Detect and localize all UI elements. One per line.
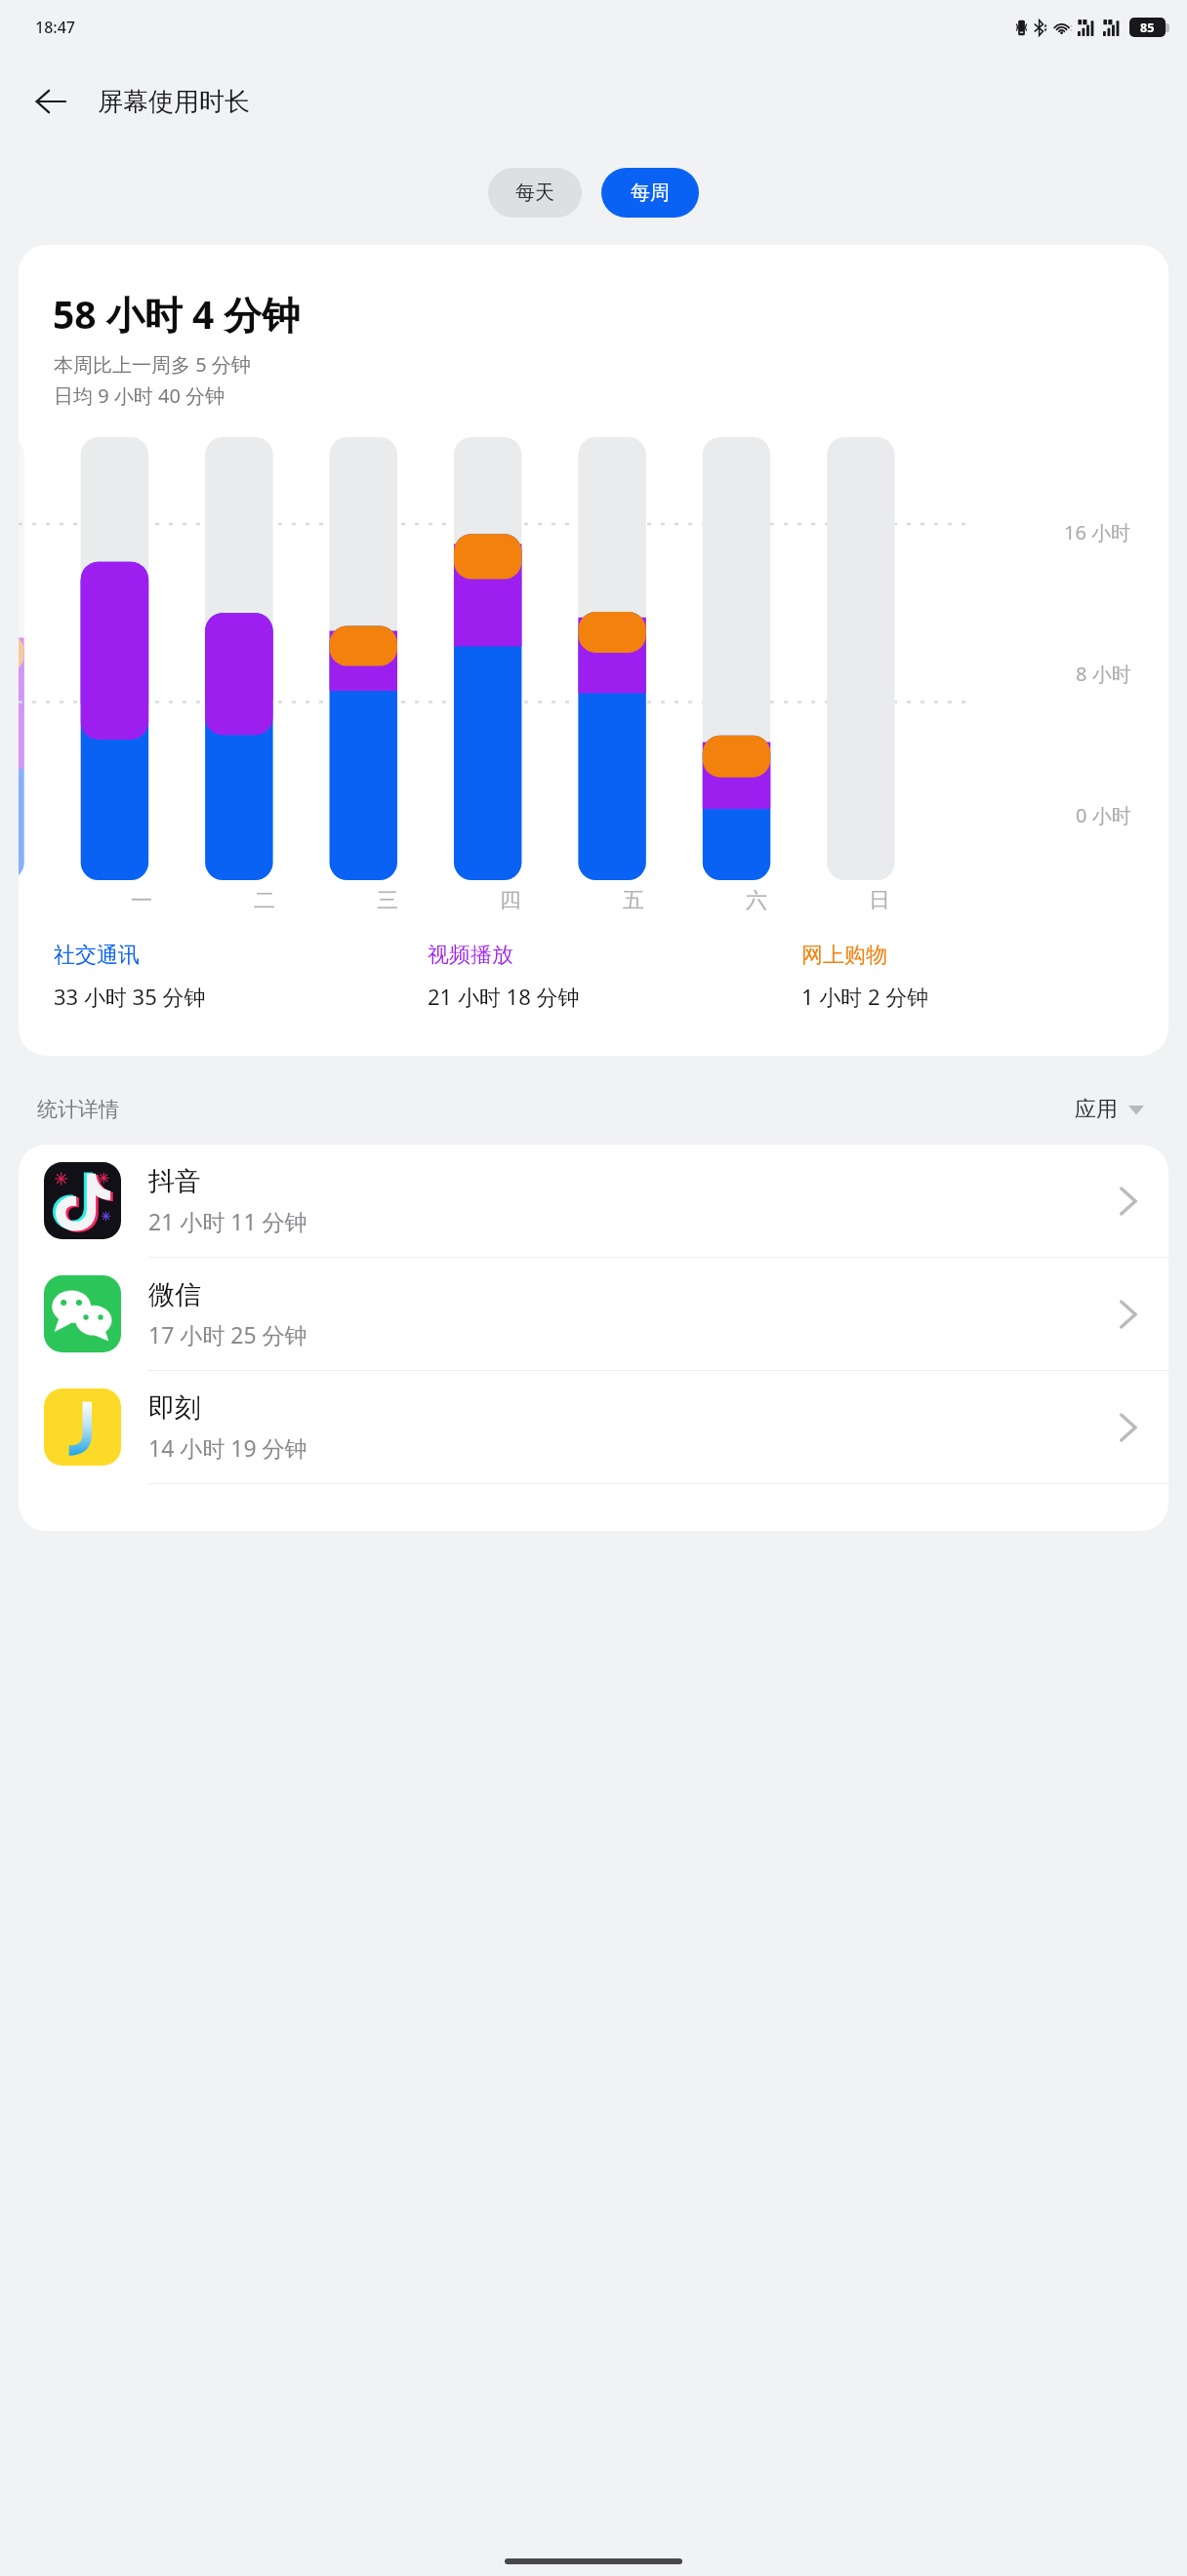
staticText: 每天: [515, 181, 554, 205]
button[interactable]: Back: [21, 72, 80, 131]
staticText: 1 小时 2 分钟: [801, 982, 929, 1011]
staticText: 8 小时: [1076, 661, 1131, 687]
button[interactable]: 每周: [601, 168, 699, 218]
staticText: 日: [869, 887, 890, 914]
staticText: 社交通讯: [54, 942, 140, 969]
staticText: 二: [254, 887, 275, 914]
staticText: 网上购物: [801, 942, 887, 969]
staticText: 21 小时 18 分钟: [428, 982, 580, 1011]
staticText: 21 小时 11 分钟: [148, 1206, 307, 1236]
staticText: 六: [746, 887, 767, 914]
staticText: 每周: [631, 181, 670, 205]
button[interactable]: 微信: [19, 1258, 1168, 1371]
staticText: 14 小时 19 分钟: [148, 1432, 307, 1463]
staticText: 日均 9 小时 40 分钟: [54, 382, 225, 409]
staticText: 抖音: [148, 1165, 201, 1198]
button[interactable]: 每天: [488, 168, 582, 218]
staticText: 85: [1140, 20, 1155, 36]
staticText: 16 小时: [1064, 519, 1131, 545]
staticText: 0 小时: [1076, 802, 1131, 828]
staticText: 五: [623, 887, 644, 914]
staticText: 17 小时 25 分钟: [148, 1319, 307, 1349]
staticText: 58 小时 4 分钟: [53, 288, 301, 340]
button[interactable]: 即刻: [19, 1371, 1168, 1484]
staticText: 统计详情: [37, 1097, 119, 1122]
staticText: 本周比上一周多 5 分钟: [54, 351, 251, 378]
staticText: 一: [131, 887, 152, 914]
staticText: 33 小时 35 分钟: [54, 982, 206, 1011]
button[interactable]: 抖音: [19, 1145, 1168, 1258]
staticText: 应用: [1075, 1096, 1118, 1123]
button[interactable]: 应用: [1069, 1090, 1150, 1129]
staticText: 四: [500, 887, 521, 914]
staticText: 屏幕使用时长: [98, 86, 250, 118]
staticText: 三: [377, 887, 398, 914]
staticText: 18:47: [35, 17, 75, 38]
staticText: 微信: [148, 1278, 201, 1311]
staticText: 视频播放: [428, 942, 513, 969]
staticText: 即刻: [148, 1391, 201, 1425]
